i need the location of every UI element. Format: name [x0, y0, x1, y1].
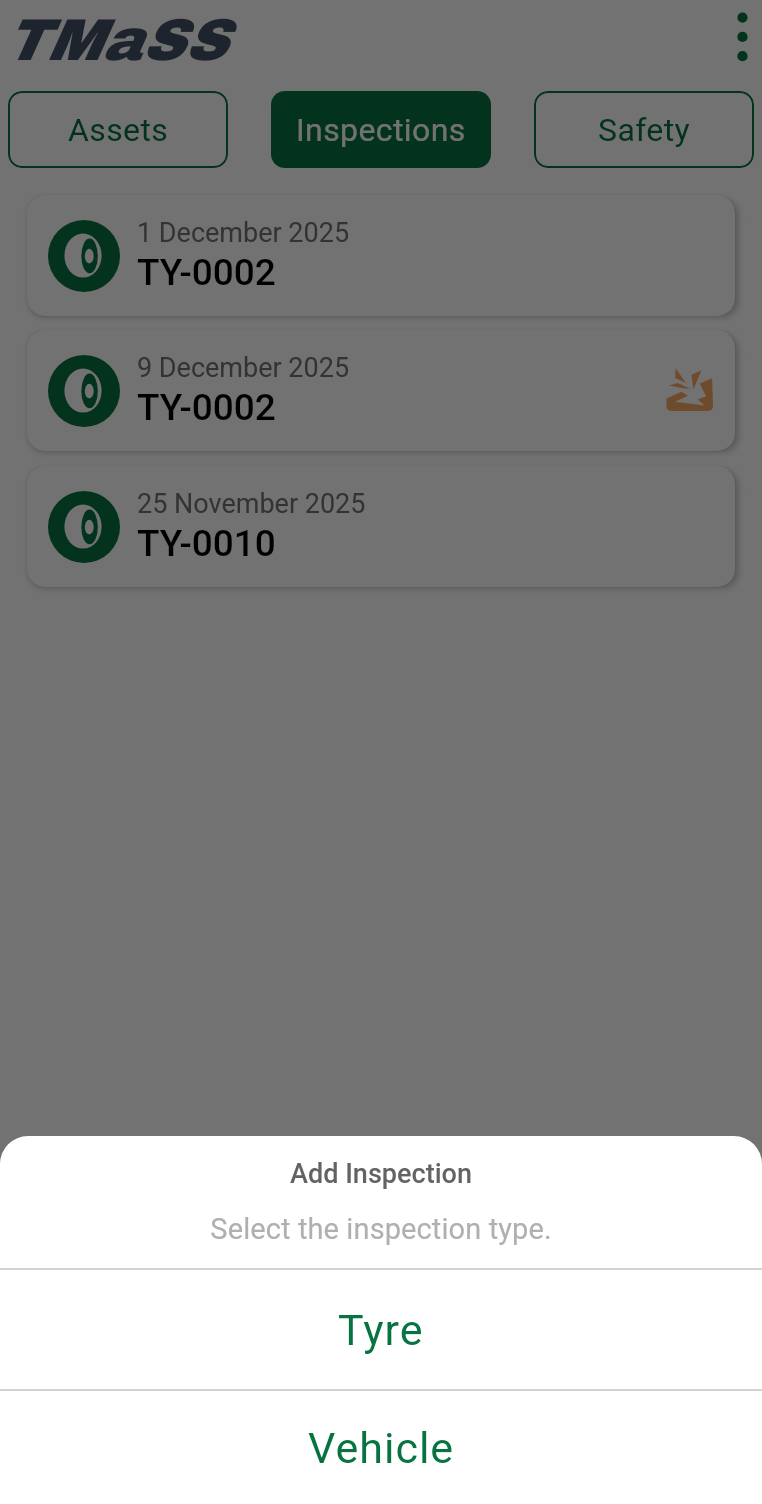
staticText: Select the inspection type. [210, 1212, 552, 1246]
staticText: TY-0002 [137, 386, 276, 429]
staticText: Tyre [338, 1305, 424, 1355]
staticText: 25 November 2025 [137, 488, 366, 520]
button[interactable]: Inspections [271, 91, 491, 168]
button[interactable]: 25 November 2025 [27, 466, 735, 587]
button[interactable]: Vehicle [0, 1391, 762, 1504]
staticText: Safety [598, 111, 691, 149]
button[interactable]: Assets [8, 91, 228, 168]
staticText: 1 December 2025 [137, 217, 350, 249]
staticText: TY-0010 [137, 522, 276, 565]
staticText: TY-0002 [137, 251, 276, 294]
staticText: Add Inspection [290, 1158, 472, 1190]
button[interactable]: 1 December 2025 [27, 195, 735, 316]
button[interactable]: Tyre [0, 1270, 762, 1389]
staticText: TMaSS [3, 8, 226, 72]
staticText: Inspections [296, 111, 466, 149]
staticText: Assets [68, 111, 169, 149]
staticText: Vehicle [308, 1423, 455, 1473]
button[interactable]: 9 December 2025 [27, 330, 735, 451]
button[interactable]: More options [718, 0, 762, 74]
button[interactable]: Safety [534, 91, 754, 168]
staticText: 9 December 2025 [137, 352, 350, 384]
